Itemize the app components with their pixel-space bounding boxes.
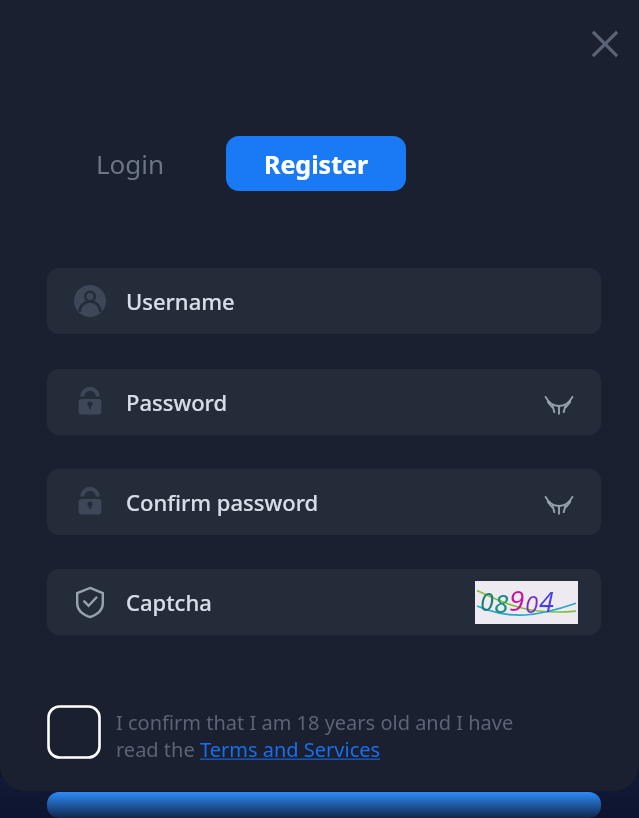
button[interactable]: Confirm password [47,469,601,535]
staticText: Captcha [126,587,212,617]
staticText: 4 [539,583,554,620]
staticText: I confirm that I am 18 years old and I h… [116,709,514,736]
staticText: 0 [480,584,494,618]
button[interactable]: Login [96,146,165,181]
staticText: 8 [494,585,509,620]
button[interactable]: Captcha image, refresh [475,581,578,624]
button[interactable]: Show password [537,380,581,424]
staticText: 0 [525,587,539,620]
staticText: Confirm password [126,487,319,517]
staticText: 9 [509,581,525,619]
button[interactable]: Terms and Services [200,736,381,763]
button[interactable]: Register [226,136,406,191]
staticText: Username [126,286,235,316]
button[interactable]: Captcha [47,569,601,635]
staticText: Terms and Services [200,736,381,763]
button[interactable] [47,792,601,818]
button[interactable]: Close [582,21,628,67]
button[interactable]: Username [47,268,601,334]
button[interactable]: Show password [537,480,581,524]
staticText: read the [116,736,200,763]
button[interactable]: Password [47,369,601,435]
staticText: Register [264,147,369,181]
staticText: Password [126,387,228,417]
staticText: Login [96,146,165,181]
button[interactable]: Confirm age checkbox [47,705,101,759]
